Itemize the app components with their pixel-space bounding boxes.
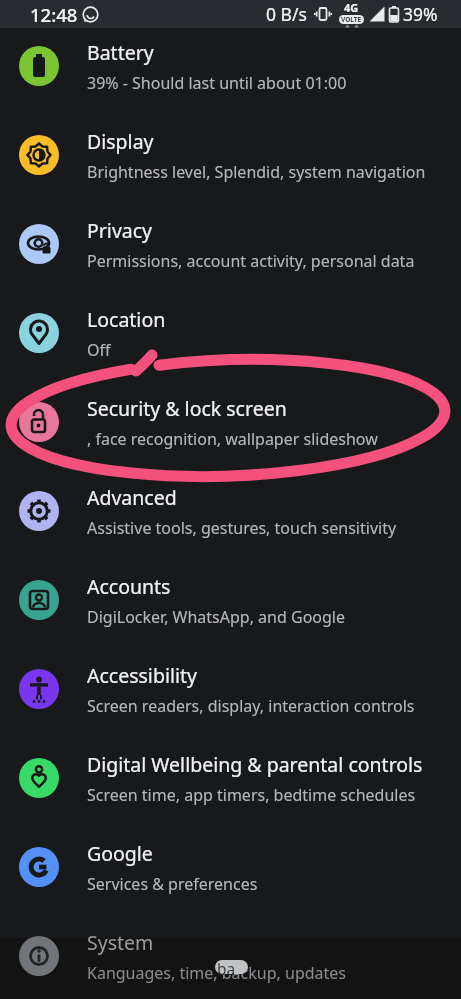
staticText: Display xyxy=(87,128,154,155)
button[interactable]: Display xyxy=(0,111,461,200)
staticText: Advanced xyxy=(87,484,177,511)
button[interactable]: Google xyxy=(0,823,461,912)
staticText: Security & lock screen xyxy=(87,395,287,422)
staticText: Services & preferences xyxy=(87,873,258,895)
staticText: Screen time, app timers, bedtime schedul… xyxy=(87,784,416,806)
button[interactable]: System xyxy=(0,912,461,999)
button[interactable]: Location xyxy=(0,289,461,378)
staticText: Kanguages, time, backup, updates xyxy=(87,962,347,984)
button[interactable]: Security & lock screen xyxy=(0,378,461,467)
staticText: 12:48 xyxy=(30,2,78,27)
staticText: Google xyxy=(87,840,153,867)
staticText: Accounts xyxy=(87,573,171,600)
staticText: 0 B/s xyxy=(266,2,307,26)
staticText: ba xyxy=(217,958,236,979)
staticText: Off xyxy=(87,339,111,361)
staticText: Brightness level, Splendid, system navig… xyxy=(87,161,426,183)
staticText: 39% xyxy=(403,2,438,26)
staticText: VOLTE xyxy=(341,15,362,24)
staticText: Assistive tools, gestures, touch sensiti… xyxy=(87,517,397,539)
staticText: Accessibility xyxy=(87,662,197,689)
button[interactable]: Accounts xyxy=(0,556,461,645)
staticText: Location xyxy=(87,306,166,333)
staticText: , face recognition, wallpaper slideshow xyxy=(87,428,378,450)
staticText: Screen readers, display, interaction con… xyxy=(87,695,415,717)
staticText: Digital Wellbeing & parental controls xyxy=(87,751,423,778)
staticText: 39% - Should last until about 01:00 xyxy=(87,72,347,94)
staticText: DigiLocker, WhatsApp, and Google xyxy=(87,606,345,628)
staticText: Battery xyxy=(87,39,154,66)
button[interactable]: Digital Wellbeing & parental controls xyxy=(0,734,461,823)
button[interactable]: Advanced xyxy=(0,467,461,556)
staticText: 4G xyxy=(344,0,359,15)
button[interactable]: Battery xyxy=(0,22,461,111)
staticText: System xyxy=(87,929,154,956)
staticText: Permissions, account activity, personal … xyxy=(87,250,415,272)
staticText: Privacy xyxy=(87,217,153,244)
button[interactable]: Accessibility xyxy=(0,645,461,734)
button[interactable]: Privacy xyxy=(0,200,461,289)
